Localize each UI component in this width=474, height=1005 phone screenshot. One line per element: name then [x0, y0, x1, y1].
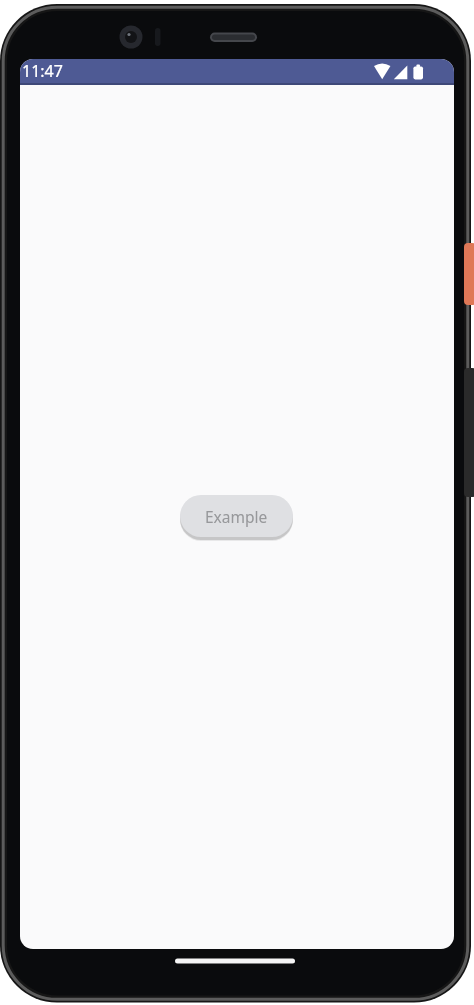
- staticText: Example: [205, 506, 268, 527]
- button[interactable]: Example: [180, 495, 293, 537]
- staticText: 11:47: [22, 60, 63, 82]
